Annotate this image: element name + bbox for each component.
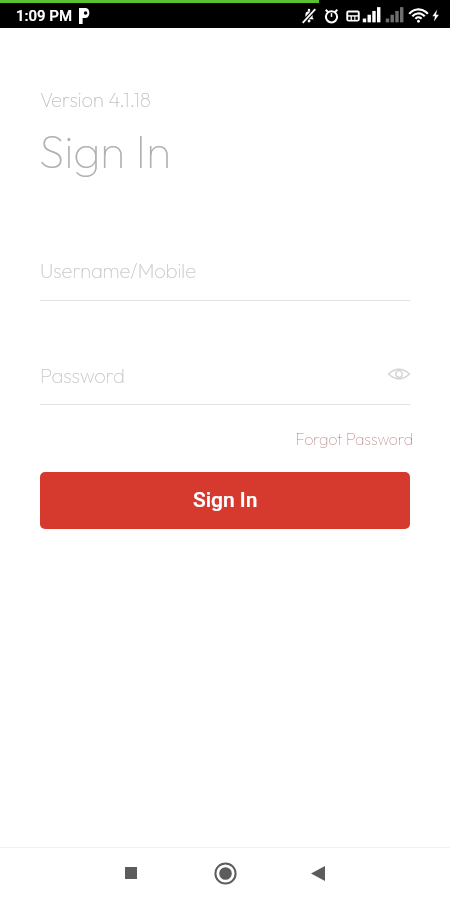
staticText: Version 4.1.18 (40, 87, 151, 112)
button[interactable]: Home (201, 849, 249, 897)
button[interactable]: Forgot Password (283, 424, 413, 454)
button[interactable]: Recents (107, 849, 155, 897)
staticText: Sign In (193, 488, 258, 513)
button[interactable]: Back (294, 849, 342, 897)
staticText: Username/Mobile (40, 258, 197, 283)
button[interactable]: Show password (384, 359, 414, 389)
staticText: Sign In (39, 122, 171, 180)
staticText: Password (40, 363, 125, 388)
staticText: 1:09 PM (16, 7, 73, 25)
button[interactable]: Sign In (40, 472, 410, 529)
staticText: Forgot Password (295, 429, 413, 449)
